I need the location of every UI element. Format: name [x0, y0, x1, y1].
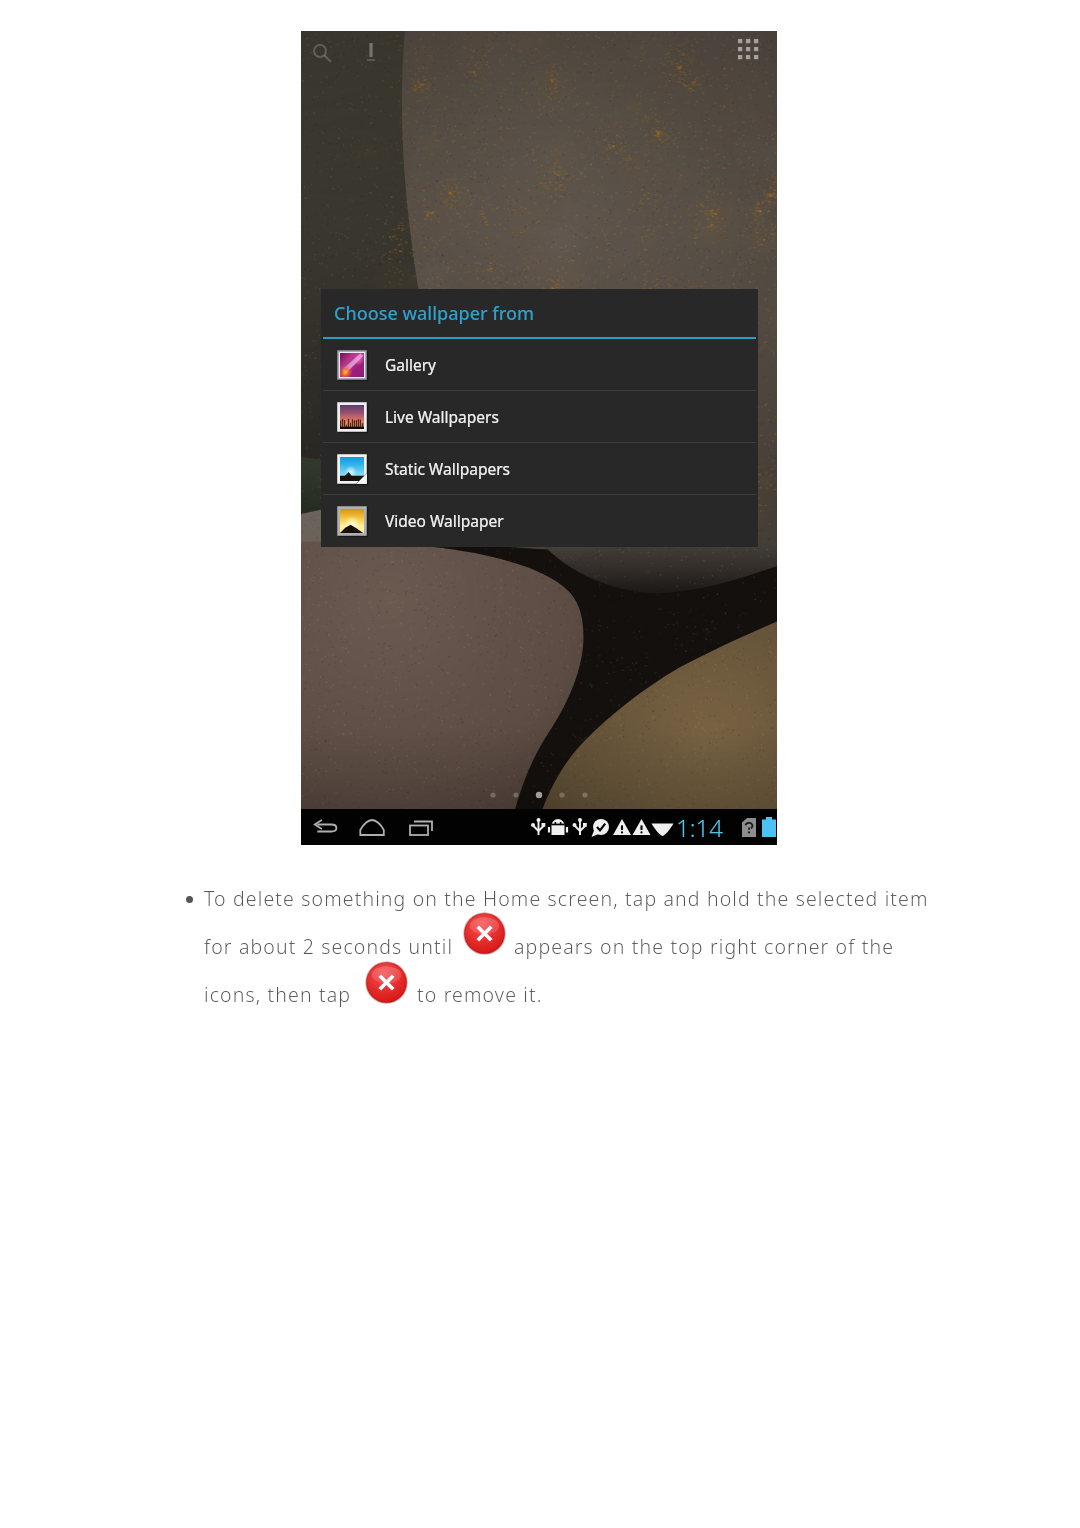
staticText: Static Wallpapers — [385, 458, 510, 479]
staticText: Video Wallpaper — [385, 510, 504, 531]
staticText: to remove it. — [417, 981, 543, 1008]
button[interactable]: Static Wallpapers — [321, 443, 758, 494]
staticText: for about 2 seconds until — [204, 933, 454, 960]
staticText: Gallery — [385, 354, 437, 375]
staticText: icons, then tap — [204, 981, 352, 1008]
button[interactable]: Video Wallpaper — [321, 495, 758, 546]
button[interactable]: Remove — [462, 911, 507, 956]
staticText: To delete something on the Home screen, … — [204, 885, 929, 912]
button[interactable]: Gallery — [321, 339, 758, 390]
button[interactable]: Live Wallpapers — [321, 391, 758, 442]
staticText: Live Wallpapers — [385, 406, 499, 427]
button[interactable]: Remove — [364, 960, 409, 1005]
staticText: Choose wallpaper from — [334, 301, 534, 326]
staticText: 1:14 — [676, 811, 723, 844]
staticText: appears on the top right corner of the — [514, 933, 895, 960]
